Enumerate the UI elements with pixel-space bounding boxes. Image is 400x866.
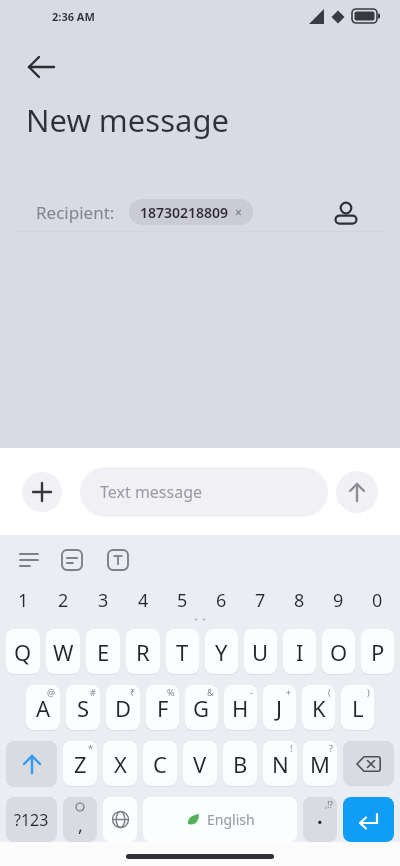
button[interactable]: ,!? xyxy=(303,797,337,842)
button[interactable]: * xyxy=(63,741,97,786)
button[interactable]: % xyxy=(146,685,179,730)
button[interactable]: ₹ xyxy=(106,685,140,730)
button[interactable]: 7 xyxy=(241,585,280,615)
staticText: % xyxy=(167,686,175,698)
button[interactable]: 5 xyxy=(163,585,202,615)
button[interactable]: ? xyxy=(303,741,337,786)
staticText: S xyxy=(77,693,90,723)
staticText: 18730218809 xyxy=(140,203,229,222)
button[interactable]: ( xyxy=(302,685,335,730)
button[interactable]: ?123 xyxy=(6,797,57,842)
staticText: M xyxy=(310,749,330,779)
staticText: L xyxy=(352,693,364,723)
button[interactable]: C xyxy=(143,741,177,786)
button[interactable]: Text message xyxy=(80,467,328,517)
button[interactable]: 8 xyxy=(280,585,319,615)
button[interactable]: U xyxy=(244,629,277,674)
staticText: 8 xyxy=(294,588,305,613)
staticText: 3 xyxy=(98,588,109,613)
staticText: 2 xyxy=(58,588,69,613)
staticText: 6 xyxy=(216,588,227,613)
staticText: ( xyxy=(328,686,331,698)
button[interactable]: B xyxy=(223,741,257,786)
staticText: ? xyxy=(329,742,333,754)
staticText: F xyxy=(157,693,169,723)
staticText: G xyxy=(193,693,210,723)
staticText: 7 xyxy=(255,588,266,613)
staticText: + xyxy=(286,686,292,698)
button[interactable]: X xyxy=(103,741,137,786)
button[interactable]: 6 xyxy=(202,585,241,615)
button[interactable]: , xyxy=(63,797,97,842)
button[interactable]: 3 xyxy=(83,585,123,615)
button[interactable] xyxy=(19,549,41,571)
button[interactable]: I xyxy=(283,629,316,674)
staticText: New message xyxy=(26,99,229,141)
button[interactable]: - xyxy=(224,685,257,730)
button[interactable]: O xyxy=(322,629,355,674)
staticText: O xyxy=(330,637,348,667)
button[interactable]: 0 xyxy=(358,585,397,615)
staticText: @ xyxy=(47,686,56,698)
staticText: V xyxy=(193,749,207,779)
button[interactable] xyxy=(61,549,83,571)
staticText: English xyxy=(207,810,255,829)
staticText: . xyxy=(317,803,323,830)
staticText: J xyxy=(276,693,283,723)
button[interactable] xyxy=(107,549,129,571)
button[interactable]: E xyxy=(86,629,120,674)
staticText: Y xyxy=(215,637,228,667)
staticText: W xyxy=(53,637,74,667)
button[interactable]: + xyxy=(263,685,296,730)
staticText: Q xyxy=(14,637,32,667)
staticText: 0 xyxy=(372,588,383,613)
button[interactable] xyxy=(103,797,137,842)
staticText: K xyxy=(312,693,326,723)
button[interactable]: # xyxy=(66,685,100,730)
staticText: ,!? xyxy=(325,799,333,810)
button[interactable]: R xyxy=(126,629,160,674)
staticText: I xyxy=(296,637,304,667)
button[interactable]: & xyxy=(185,685,218,730)
button[interactable] xyxy=(28,53,56,81)
button[interactable]: V xyxy=(183,741,217,786)
button[interactable]: Q xyxy=(6,629,40,674)
staticText: ₹ xyxy=(130,686,136,698)
staticText: ) xyxy=(367,686,370,698)
staticText: U xyxy=(252,637,269,667)
button[interactable]: English xyxy=(143,797,297,842)
button[interactable]: @ xyxy=(26,685,60,730)
staticText: - xyxy=(250,686,253,698)
staticText: E xyxy=(97,637,110,667)
button[interactable]: ! xyxy=(263,741,297,786)
button[interactable]: W xyxy=(46,629,80,674)
button[interactable]: P xyxy=(361,629,394,674)
button[interactable]: 9 xyxy=(319,585,358,615)
staticText: ! xyxy=(290,742,293,754)
button[interactable] xyxy=(343,797,394,842)
staticText: N xyxy=(272,749,289,779)
button[interactable] xyxy=(6,741,57,786)
staticText: P xyxy=(371,637,385,667)
staticText: D xyxy=(115,693,132,723)
button[interactable]: 4 xyxy=(123,585,163,615)
button[interactable]: Y xyxy=(205,629,238,674)
staticText: * xyxy=(88,742,93,754)
button[interactable]: ) xyxy=(341,685,374,730)
button[interactable] xyxy=(336,471,378,513)
staticText: T xyxy=(176,637,189,667)
staticText: Text message xyxy=(100,481,203,503)
button[interactable] xyxy=(332,198,360,226)
button[interactable] xyxy=(22,472,62,512)
staticText: B xyxy=(233,749,248,779)
button[interactable]: 1 xyxy=(3,585,43,615)
button[interactable] xyxy=(343,741,394,786)
staticText: × xyxy=(235,204,242,220)
button[interactable]: T xyxy=(166,629,199,674)
staticText: X xyxy=(114,749,127,779)
staticText: 5 xyxy=(177,588,188,613)
staticText: ?123 xyxy=(14,809,49,831)
button[interactable]: 2 xyxy=(43,585,83,615)
staticText: 9 xyxy=(333,588,344,613)
button[interactable]: 18730218809 xyxy=(129,199,253,225)
